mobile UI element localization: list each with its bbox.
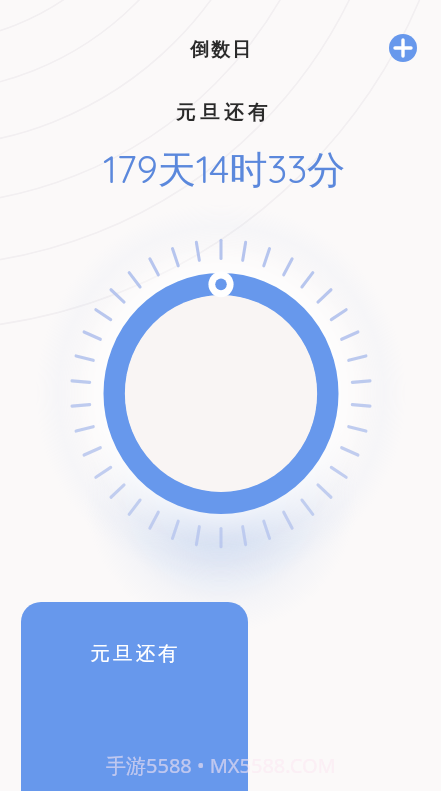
button[interactable]: 元旦还有	[21, 602, 248, 791]
staticText: 元旦还有	[89, 641, 179, 666]
button[interactable]: Add countdown	[389, 34, 417, 62]
staticText: 手游5588 • MX5588.COM	[106, 752, 336, 779]
staticText: 元旦还有	[176, 100, 272, 125]
staticText: 倒数日	[189, 38, 252, 62]
staticText: 179天14时33分	[103, 145, 346, 194]
